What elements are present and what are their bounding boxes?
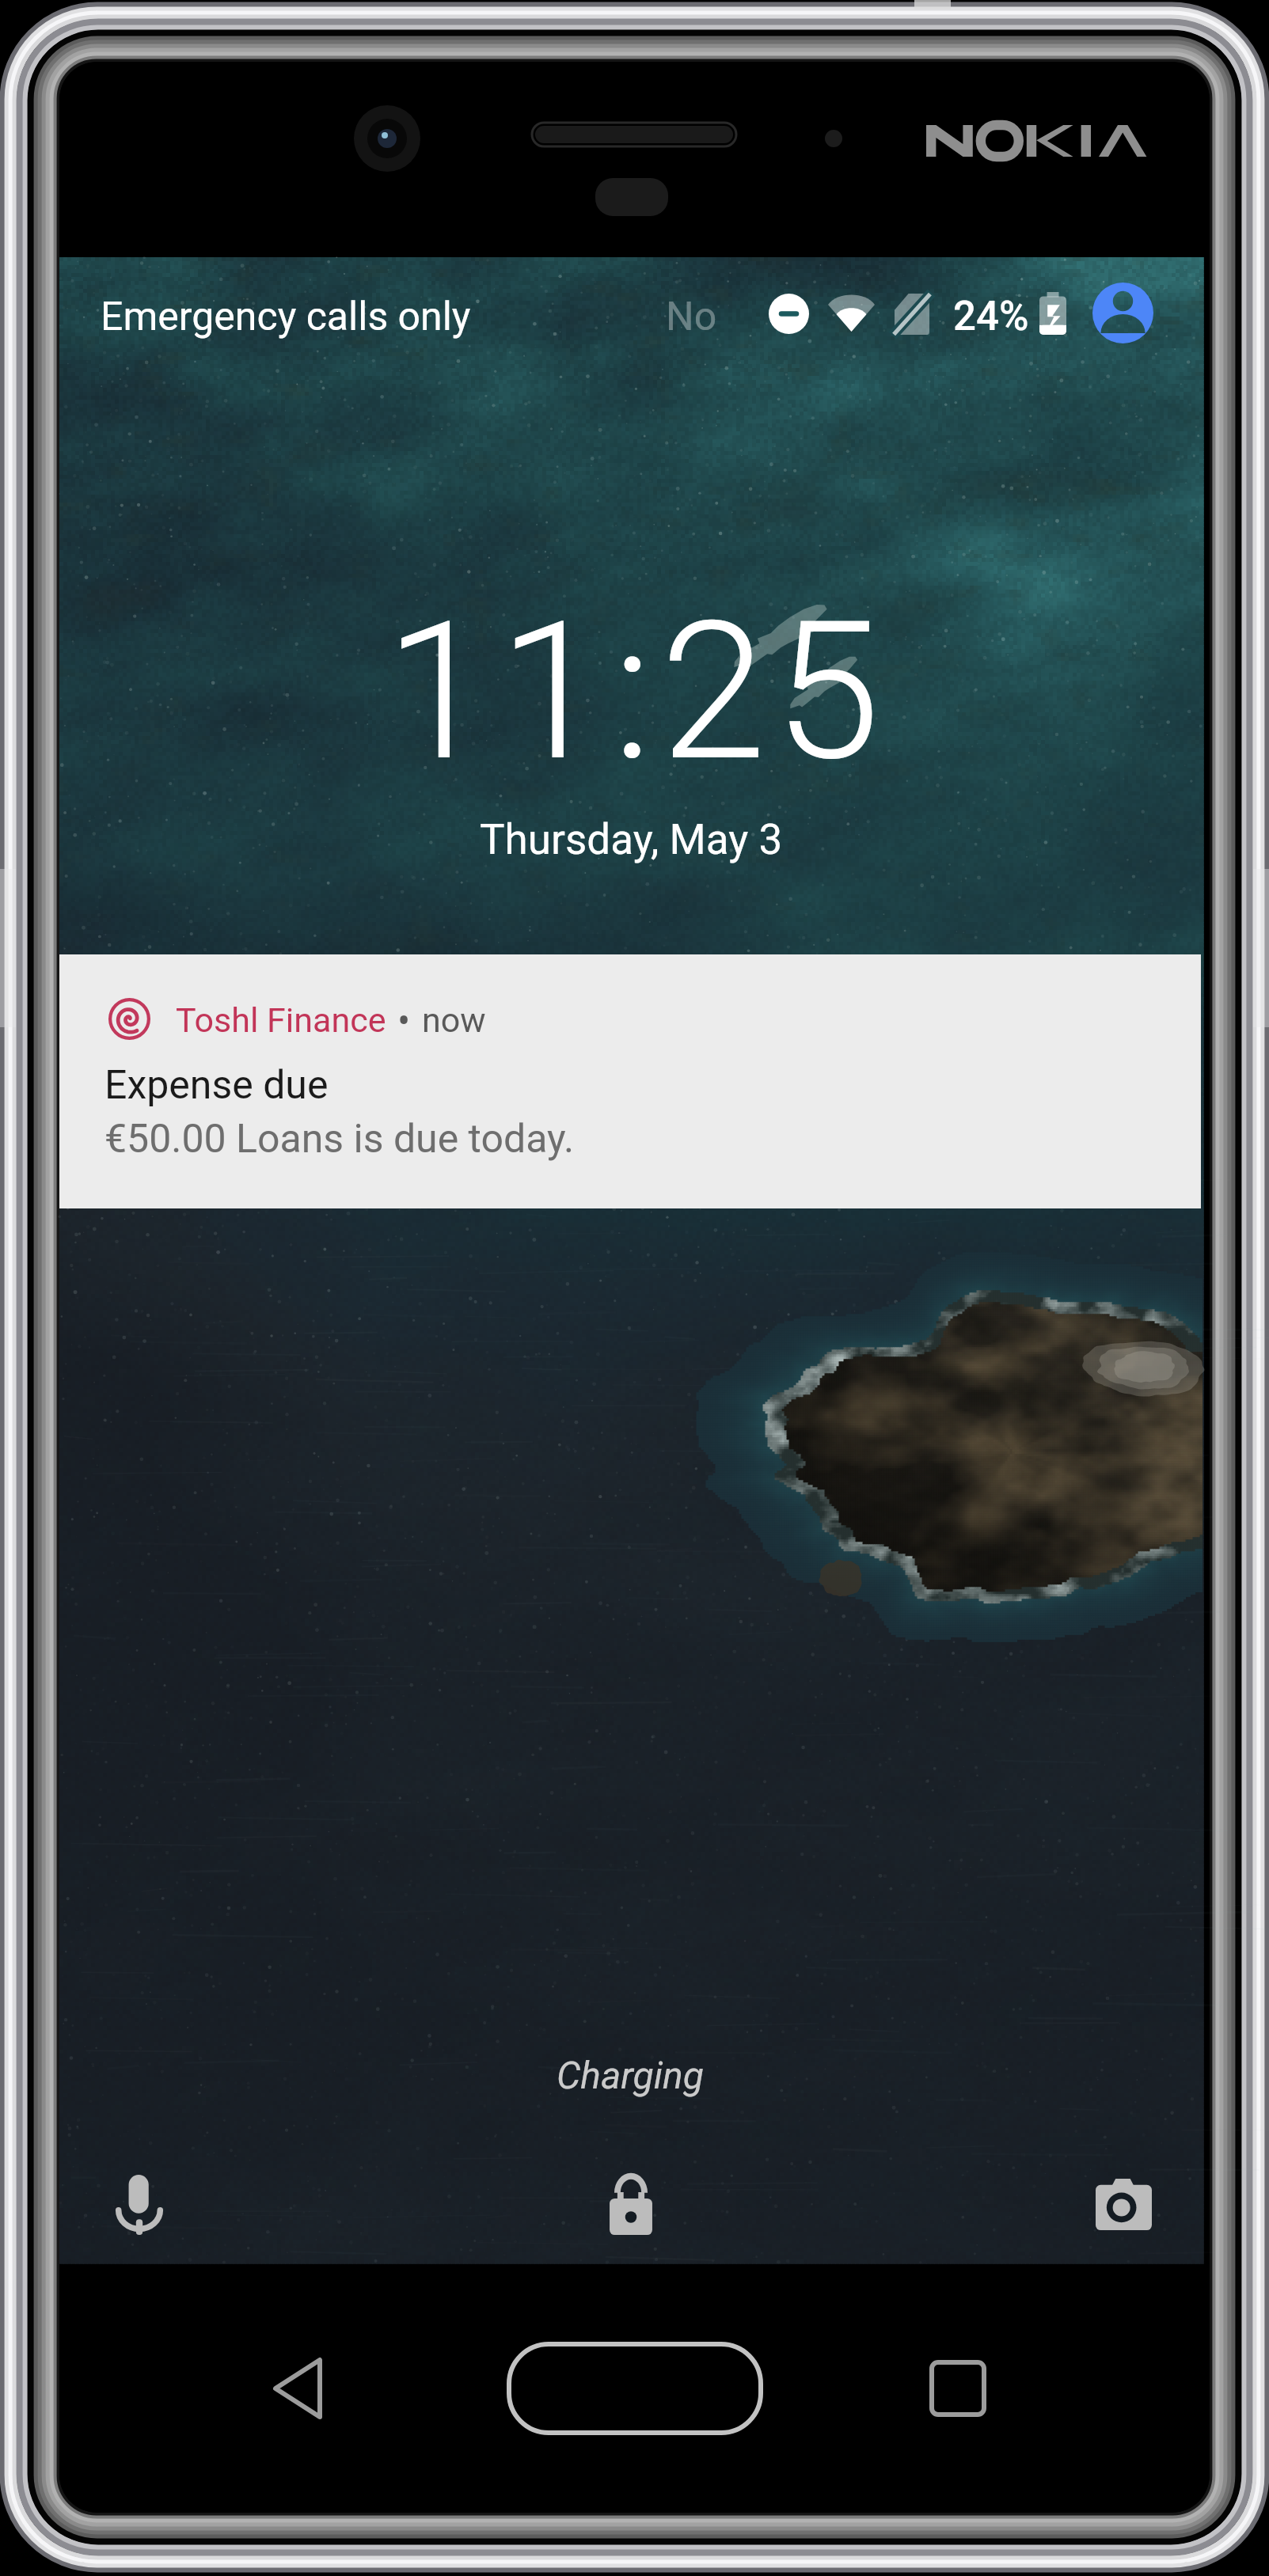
staticText: Charging xyxy=(557,2053,704,2097)
staticText: Emergency calls only xyxy=(101,294,471,340)
staticText: • xyxy=(397,996,411,1043)
button[interactable]: Camera xyxy=(1060,2141,1187,2267)
staticText: Thursday, May 3 xyxy=(480,815,783,864)
staticText: 24% xyxy=(953,293,1029,340)
staticText: Expense due xyxy=(104,1062,329,1109)
button[interactable]: Toshl Finance xyxy=(59,954,1201,1208)
staticText: No xyxy=(666,294,717,340)
button[interactable]: Voice assistant xyxy=(76,2142,203,2268)
staticText: Toshl Finance xyxy=(176,1000,386,1040)
staticText: €50.00 Loans is due today. xyxy=(104,1116,575,1163)
button[interactable]: Switch user xyxy=(1092,283,1153,343)
button[interactable]: Locked xyxy=(568,2142,694,2268)
staticText: now xyxy=(422,1000,486,1040)
staticText: 11:25 xyxy=(385,579,888,804)
